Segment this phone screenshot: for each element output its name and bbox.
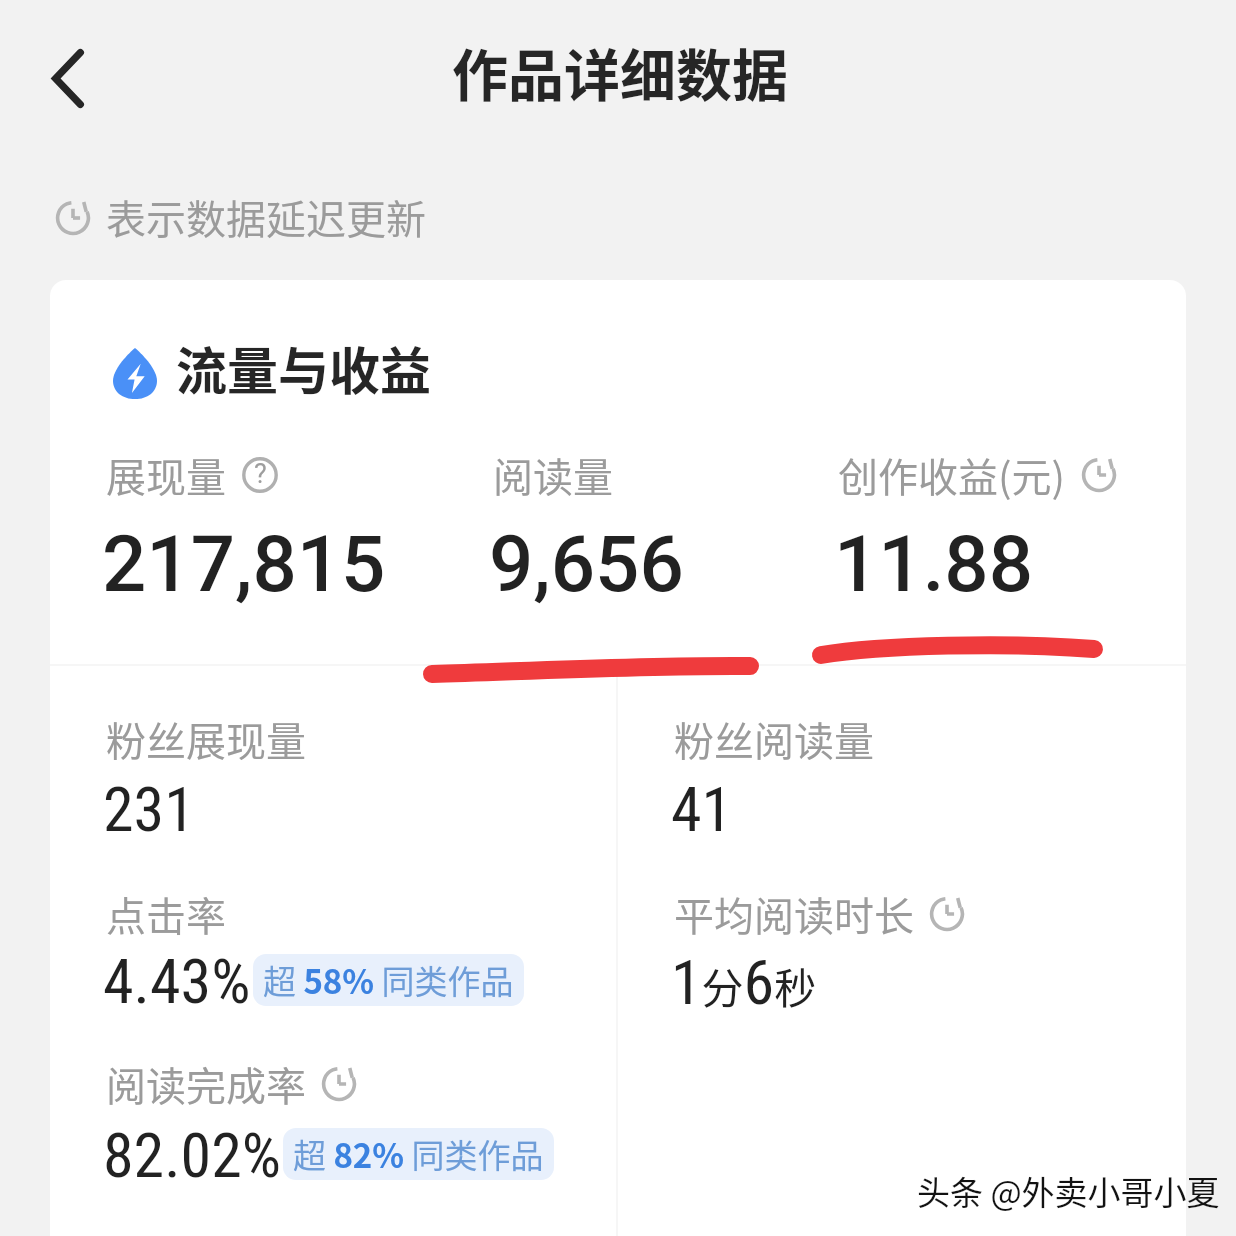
staticText: 超 82% 同类作品 <box>293 1130 544 1178</box>
staticText: 创作收益(元) <box>838 446 1066 504</box>
staticText: 超 58% 同类作品 <box>263 956 514 1004</box>
staticText: 217,815 <box>102 519 386 610</box>
staticText: 平均阅读时长 <box>674 885 914 943</box>
staticText: 11.88 <box>834 519 1033 610</box>
staticText: 阅读完成率 <box>106 1055 306 1113</box>
staticText: 82.02% <box>103 1119 282 1192</box>
staticText: 9,656 <box>489 519 684 610</box>
staticText: 阅读量 <box>493 446 613 504</box>
staticText: ? <box>254 458 267 490</box>
button[interactable]: Back <box>18 38 100 120</box>
button[interactable]: 平均阅读时长 <box>674 885 1174 1035</box>
button[interactable]: 粉丝展现量 <box>106 710 606 860</box>
button[interactable]: 超 82% 同类作品 <box>293 1128 544 1180</box>
staticText: 头条 @外卖小哥小夏 <box>917 1167 1220 1215</box>
staticText: 粉丝阅读量 <box>674 710 874 768</box>
button[interactable]: 粉丝阅读量 <box>674 710 1174 860</box>
staticText: 作品详细数据 <box>452 31 788 112</box>
staticText: 1分6秒 <box>671 946 817 1019</box>
button[interactable]: 超 58% 同类作品 <box>263 954 514 1006</box>
staticText: 流量与收益 <box>176 331 432 405</box>
staticText: 粉丝展现量 <box>106 710 306 768</box>
button[interactable]: 阅读完成率 <box>106 1055 606 1205</box>
button[interactable]: 展现量 <box>106 446 436 586</box>
button[interactable]: 创作收益(元) <box>838 446 1168 586</box>
button[interactable]: 帮助说明 <box>242 457 278 493</box>
staticText: 点击率 <box>106 885 226 943</box>
staticText: 231 <box>103 773 195 846</box>
button[interactable]: 阅读量 <box>493 446 823 586</box>
staticText: 41 <box>671 773 733 846</box>
staticText: 展现量 <box>106 446 226 504</box>
staticText: 表示数据延迟更新 <box>106 188 426 246</box>
button[interactable]: 点击率 <box>106 885 606 1035</box>
staticText: 4.43% <box>103 945 251 1018</box>
